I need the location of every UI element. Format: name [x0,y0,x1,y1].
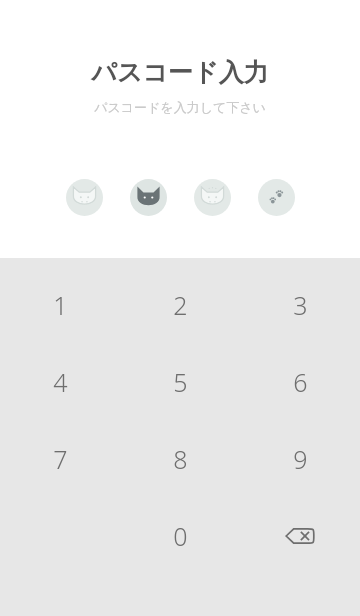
button[interactable]: 3 [240,266,360,343]
button[interactable]: 9 [240,420,360,497]
button[interactable]: 6 [240,343,360,420]
button[interactable]: 1 [0,266,120,343]
staticText: 9 [293,442,308,476]
staticText: パスコード入力 [91,57,269,88]
staticText: 5 [173,365,188,399]
staticText: 2 [173,288,188,322]
button[interactable]: 4 [0,343,120,420]
staticText: 8 [173,442,188,476]
button[interactable]: Delete [240,497,360,574]
staticText: 4 [53,365,68,399]
staticText: 7 [53,442,68,476]
button[interactable]: 5 [120,343,240,420]
button[interactable]: 7 [0,420,120,497]
button[interactable]: 2 [120,266,240,343]
staticText: パスコードを入力して下さい [94,99,266,115]
staticText: 1 [53,288,68,322]
button[interactable]: 8 [120,420,240,497]
button[interactable]: 0 [120,497,240,574]
staticText: 3 [293,288,308,322]
staticText: 6 [293,365,308,399]
staticText: 0 [173,519,188,553]
